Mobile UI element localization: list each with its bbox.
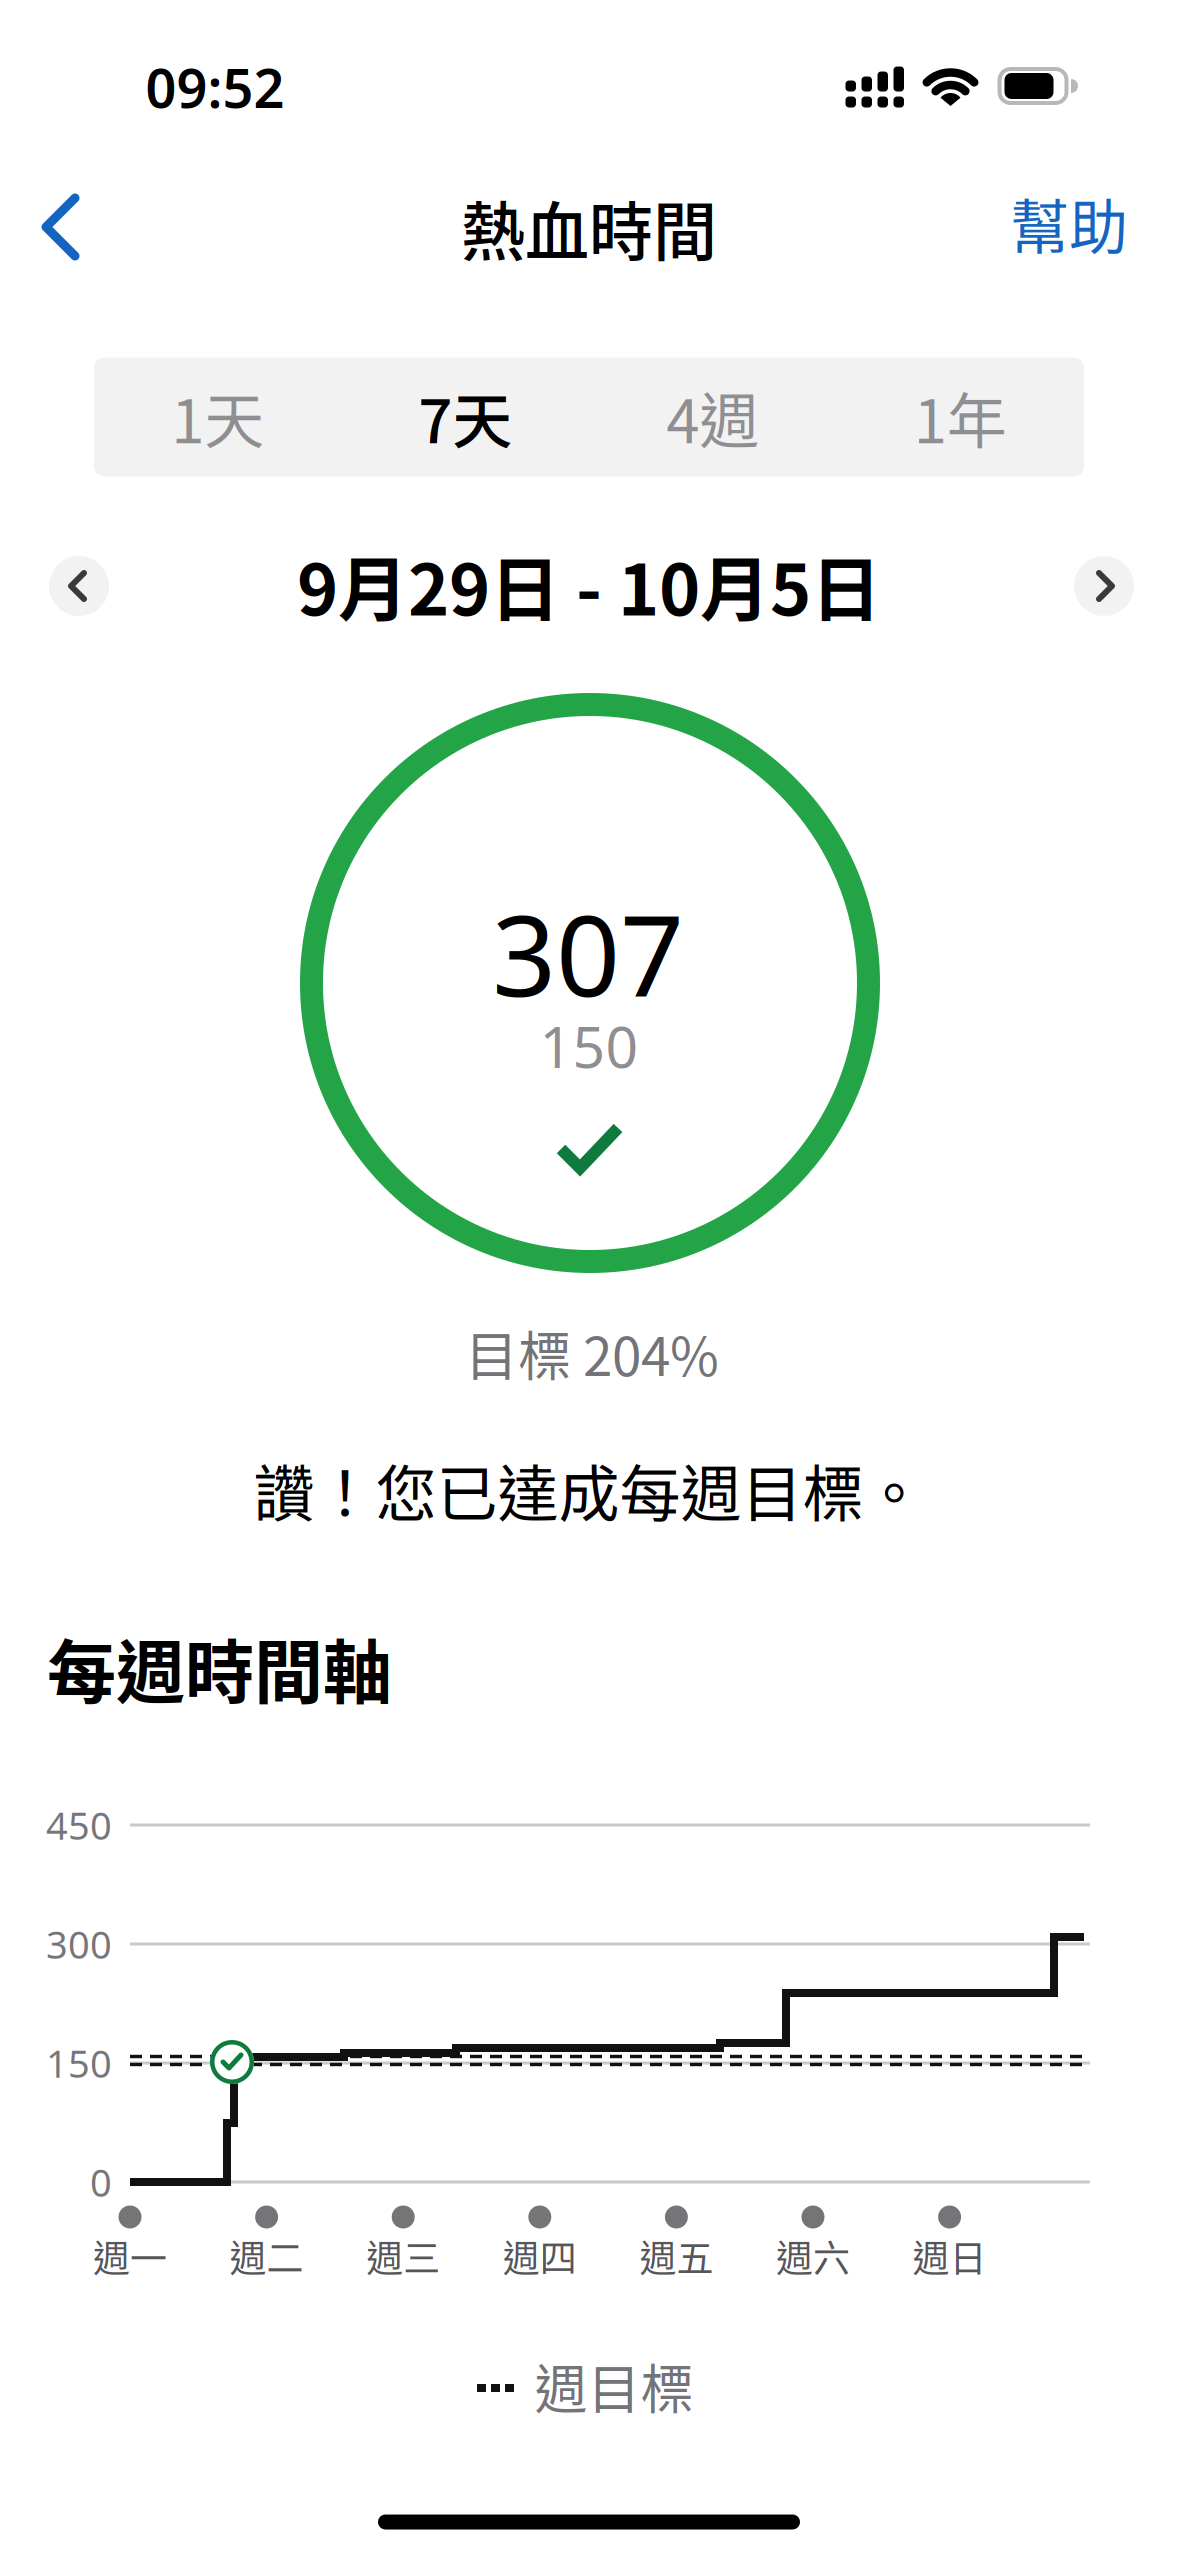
staticText: 熱血時間	[461, 181, 717, 273]
staticText: 150	[539, 1007, 638, 1085]
staticText: 週日	[913, 2229, 987, 2283]
button[interactable]: 4週	[589, 357, 836, 476]
staticText: 週二	[230, 2229, 304, 2283]
staticText: 目標 204%	[465, 1315, 719, 1391]
button[interactable]: 幫助	[1010, 180, 1128, 266]
button[interactable]: 1天	[94, 357, 341, 476]
staticText: 每週時間軸	[47, 1618, 392, 1718]
staticText: 週四	[503, 2229, 577, 2283]
button[interactable]: 返回	[10, 172, 110, 282]
staticText: 週目標	[534, 2348, 693, 2424]
button[interactable]: 1年	[836, 357, 1084, 476]
button[interactable]: 7天	[341, 357, 589, 476]
staticText: 週三	[366, 2229, 440, 2283]
staticText: 1年	[914, 374, 1007, 460]
staticText: 4週	[666, 374, 759, 460]
staticText: 週一	[93, 2229, 167, 2283]
staticText: 週六	[776, 2229, 850, 2283]
staticText: 150	[46, 2037, 112, 2089]
staticText: 1天	[171, 374, 264, 460]
staticText: 讚！您已達成每週目標。	[253, 1446, 924, 1534]
button[interactable]: 上一週	[49, 556, 109, 616]
staticText: 09:52	[145, 50, 284, 124]
staticText: 週五	[639, 2229, 713, 2283]
staticText: 7天	[418, 374, 512, 460]
staticText: 0	[90, 2156, 112, 2208]
staticText: 450	[46, 1799, 112, 1851]
staticText: 300	[46, 1918, 112, 1970]
staticText: 307	[492, 877, 684, 1029]
button[interactable]: 下一週	[1074, 556, 1134, 616]
staticText: 9月29日 - 10月5日	[297, 534, 881, 636]
staticText: 幫助	[1010, 180, 1128, 266]
